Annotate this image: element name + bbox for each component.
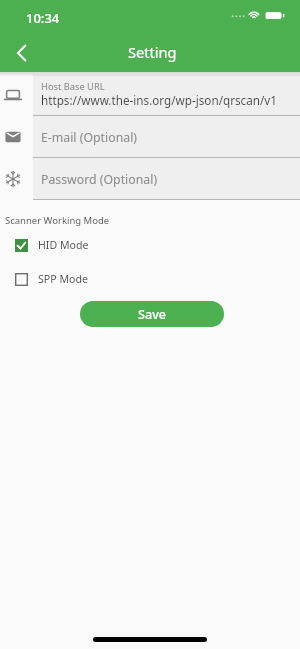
staticText: 10:34 bbox=[26, 9, 60, 27]
button[interactable]: HID Mode bbox=[0, 238, 300, 252]
button[interactable]: Save bbox=[80, 301, 224, 327]
staticText: Host Base URL bbox=[41, 80, 105, 93]
staticText: HID Mode bbox=[38, 238, 89, 252]
staticText: Password (Optional) bbox=[41, 171, 158, 188]
button[interactable]: Back bbox=[0, 32, 40, 72]
button[interactable]: SPP Mode bbox=[0, 272, 300, 286]
staticText: Scanner Working Mode bbox=[5, 214, 110, 227]
staticText: E-mail (Optional) bbox=[41, 129, 138, 146]
staticText: https://www.the-ins.org/wp-json/qrscan/v… bbox=[41, 92, 277, 108]
staticText: SPP Mode bbox=[38, 272, 88, 286]
staticText: Save bbox=[138, 306, 166, 323]
staticText: Setting bbox=[128, 42, 177, 62]
